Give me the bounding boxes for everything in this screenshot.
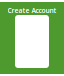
staticText: Sign up to continue [16,15,47,20]
staticText: Create Account [7,6,56,15]
